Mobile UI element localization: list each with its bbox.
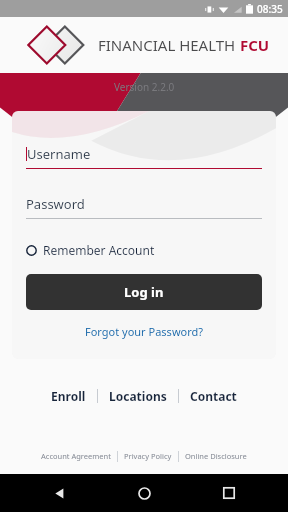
button[interactable]: Contact (179, 385, 248, 407)
button[interactable]: Enroll (40, 385, 97, 407)
staticText: FINANCIAL HEALTH (98, 35, 240, 55)
staticText: Version 2.2.0 (114, 80, 175, 94)
staticText: Password (26, 195, 85, 213)
button[interactable]: Privacy Policy (118, 449, 178, 463)
button[interactable]: Log in (26, 274, 262, 310)
button[interactable]: Username (26, 145, 262, 169)
button[interactable]: Forgot your Password? (26, 320, 262, 343)
staticText: Contact (190, 388, 237, 404)
button[interactable]: Recents (216, 480, 242, 506)
button[interactable]: Password (26, 195, 262, 219)
staticText: Remember Account (43, 242, 155, 258)
button[interactable]: Home (131, 480, 157, 506)
button[interactable]: Remember Account (26, 239, 155, 261)
staticText: Log in (124, 283, 164, 301)
button[interactable]: Locations (98, 385, 178, 407)
staticText: FCU (240, 35, 270, 55)
button[interactable]: Back (46, 480, 72, 506)
button[interactable]: Online Disclosure (179, 449, 253, 463)
staticText: 08:35 (257, 2, 283, 16)
staticText: Privacy Policy (124, 451, 172, 461)
staticText: Online Disclosure (185, 451, 247, 461)
staticText: Enroll (51, 388, 86, 404)
staticText: Locations (109, 388, 167, 404)
staticText: Username (27, 145, 91, 163)
button[interactable]: Account Agreement (35, 449, 117, 463)
staticText: Account Agreement (41, 451, 111, 461)
staticText: Forgot your Password? (85, 324, 204, 339)
